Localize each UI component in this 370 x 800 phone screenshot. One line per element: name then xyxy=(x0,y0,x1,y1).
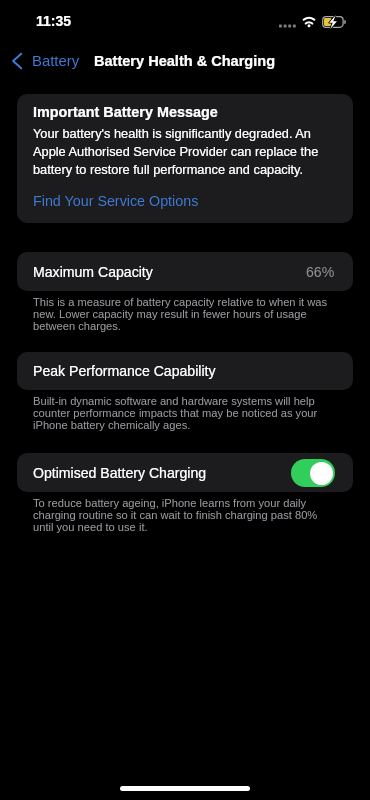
staticText: Find Your Service Options xyxy=(33,192,199,210)
button[interactable]: Battery xyxy=(11,51,80,71)
staticText: 11:35 xyxy=(36,13,72,29)
staticText: Peak Performance Capability xyxy=(33,363,216,379)
button[interactable]: Find Your Service Options xyxy=(33,192,199,210)
button[interactable]: Maximum Capacity xyxy=(17,252,353,291)
staticText: This is a measure of battery capacity re… xyxy=(33,296,328,332)
staticText: Optimised Battery Charging xyxy=(33,465,207,481)
button[interactable]: Peak Performance Capability xyxy=(17,352,353,390)
staticText: Battery Health & Charging xyxy=(94,53,276,69)
staticText: To reduce battery ageing, iPhone learns … xyxy=(33,497,318,533)
staticText: 66% xyxy=(306,264,335,280)
staticText: Your battery's health is significantly d… xyxy=(33,124,319,178)
button[interactable]: Optimised Battery Charging xyxy=(17,453,353,492)
button[interactable]: Optimised Battery Charging toggle xyxy=(291,459,335,487)
staticText: Maximum Capacity xyxy=(33,264,153,280)
staticText: Important Battery Message xyxy=(33,102,218,121)
staticText: Built-in dynamic software and hardware s… xyxy=(33,395,318,431)
staticText: Battery xyxy=(32,53,80,70)
